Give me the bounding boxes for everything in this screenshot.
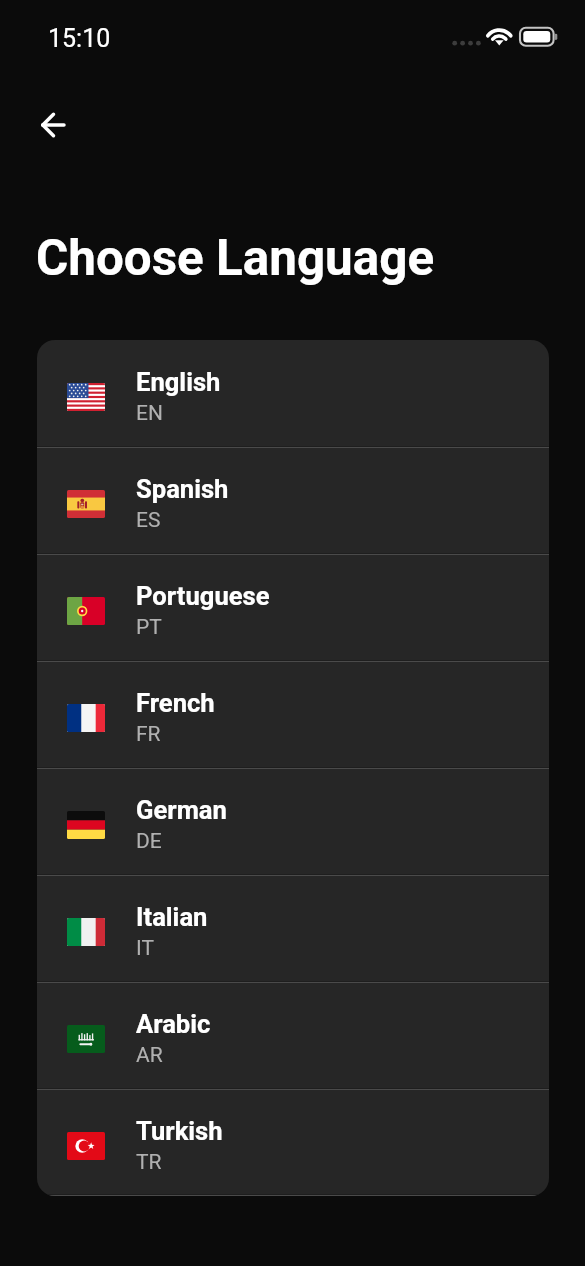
staticText: Turkish xyxy=(136,1116,223,1146)
staticText: EN xyxy=(136,401,163,426)
button[interactable]: Italian xyxy=(37,875,549,982)
button[interactable]: Spanish xyxy=(37,447,549,554)
staticText: 15:10 xyxy=(48,24,111,53)
staticText: TR xyxy=(136,1150,162,1175)
button[interactable]: Turkish xyxy=(37,1089,549,1196)
button[interactable]: Back xyxy=(24,101,80,149)
staticText: DE xyxy=(136,829,162,854)
staticText: German xyxy=(136,795,227,825)
button[interactable]: English xyxy=(37,340,549,447)
button[interactable]: Portuguese xyxy=(37,554,549,661)
staticText: Spanish xyxy=(136,474,229,504)
staticText: Portuguese xyxy=(136,581,270,611)
staticText: Arabic xyxy=(136,1009,211,1039)
staticText: English xyxy=(136,367,221,397)
staticText: Italian xyxy=(136,902,208,932)
button[interactable]: German xyxy=(37,768,549,875)
staticText: ES xyxy=(136,508,161,533)
staticText: PT xyxy=(136,615,162,640)
button[interactable]: Arabic xyxy=(37,982,549,1089)
staticText: AR xyxy=(136,1043,163,1068)
staticText: French xyxy=(136,688,215,718)
staticText: Choose Language xyxy=(36,229,435,287)
staticText: FR xyxy=(136,722,161,747)
staticText: IT xyxy=(136,936,154,961)
button[interactable]: French xyxy=(37,661,549,768)
